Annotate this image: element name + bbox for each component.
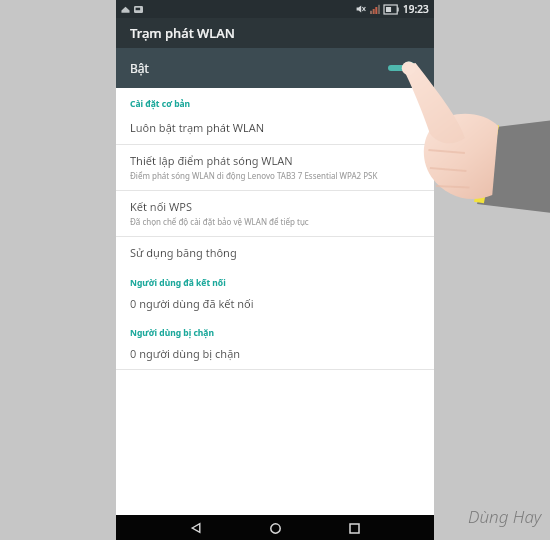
button[interactable]: Back (184, 516, 208, 540)
staticText: Sử dụng băng thông (130, 245, 237, 260)
staticText: 0 người dùng bị chặn (130, 346, 241, 361)
button[interactable]: Luôn bật trạm phát WLAN (116, 112, 434, 144)
button[interactable]: Thiết lập điểm phát sóng WLAN (116, 145, 434, 190)
staticText: Đã chọn chế độ cài đặt bảo vệ WLAN để ti… (130, 216, 309, 227)
staticText: 19:23 (403, 2, 429, 16)
staticText: Luôn bật trạm phát WLAN (130, 120, 265, 135)
button[interactable]: Home (263, 516, 287, 540)
staticText: Điểm phát sóng WLAN di động Lenovo TAB3 … (130, 170, 378, 181)
staticText: Người dùng đã kết nối (130, 277, 226, 289)
staticText: Dùng Hay (468, 505, 542, 528)
button[interactable]: Kết nối WPS (116, 191, 434, 236)
button[interactable]: Recent apps (342, 516, 366, 540)
button[interactable]: 0 người dùng bị chặn (116, 341, 434, 369)
staticText: Kết nối WPS (130, 199, 192, 214)
staticText: Người dùng bị chặn (130, 327, 214, 339)
staticText: Bật (130, 60, 149, 76)
button[interactable]: Bật (116, 48, 434, 88)
button[interactable]: Sử dụng băng thông (116, 237, 434, 269)
button[interactable]: Bật trạm phát WLAN (388, 58, 420, 78)
staticText: Cài đặt cơ bản (130, 98, 191, 110)
button[interactable]: 0 người dùng đã kết nối (116, 291, 434, 319)
staticText: Trạm phát WLAN (130, 24, 235, 42)
staticText: 0 người dùng đã kết nối (130, 296, 254, 311)
staticText: Thiết lập điểm phát sóng WLAN (130, 153, 293, 168)
